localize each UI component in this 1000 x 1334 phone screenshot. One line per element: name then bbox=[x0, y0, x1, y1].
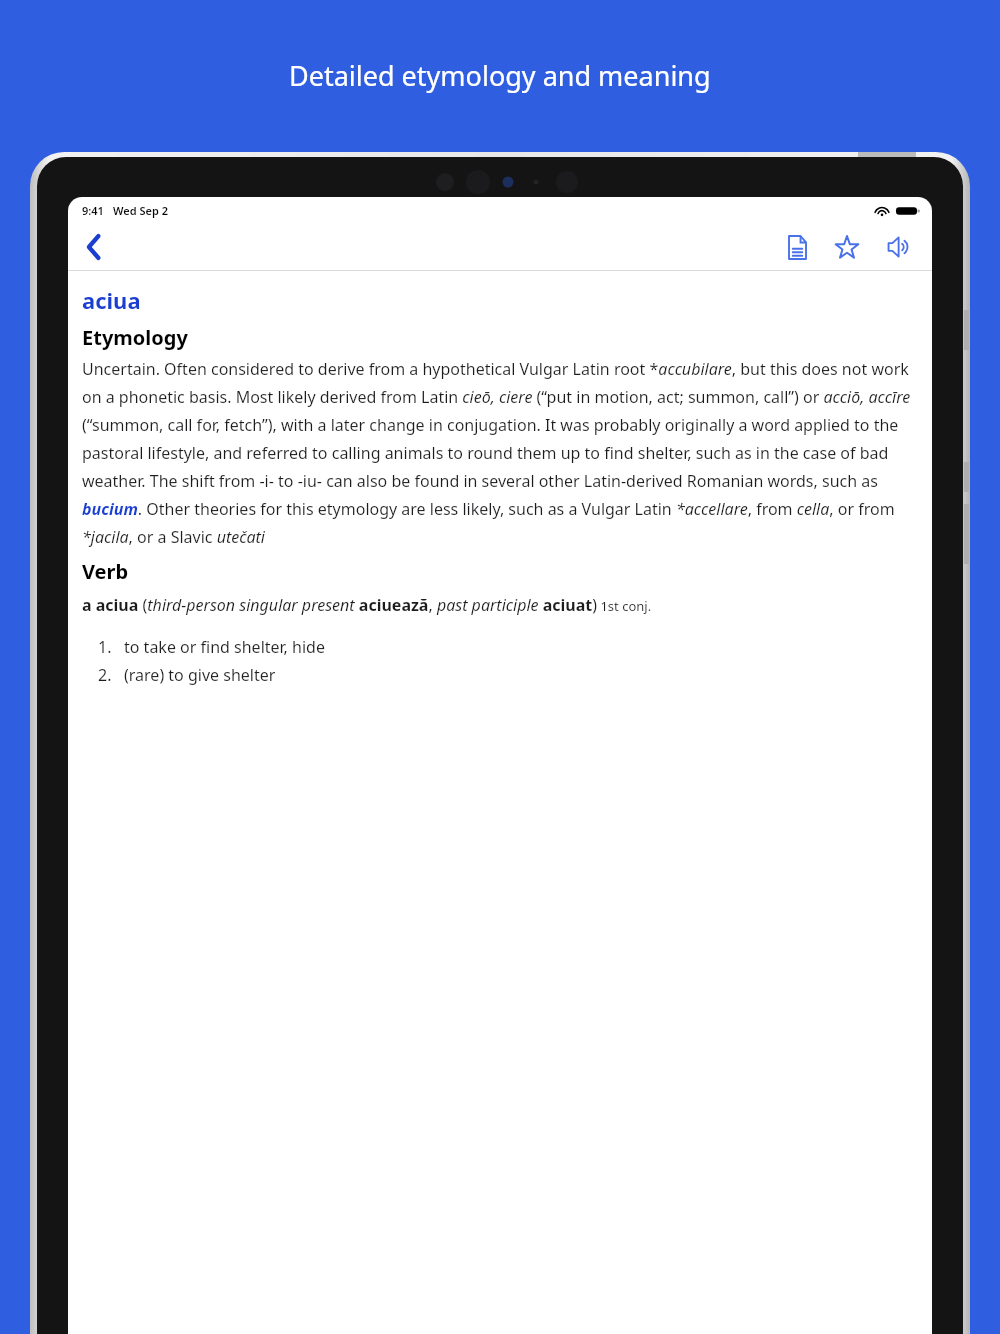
staticText: Detailed etymology and meaning bbox=[289, 57, 711, 94]
staticText: Verb bbox=[82, 558, 129, 585]
staticText: (rare) to give shelter bbox=[124, 664, 276, 686]
staticText: a aciua (third-person singular present a… bbox=[82, 594, 652, 616]
staticText: Uncertain. Often considered to derive fr… bbox=[82, 358, 918, 548]
staticText: to take or find shelter, hide bbox=[124, 636, 325, 658]
button[interactable]: Pronounce bbox=[872, 224, 928, 270]
staticText: 2. bbox=[98, 664, 112, 686]
staticText: 1. bbox=[98, 636, 112, 658]
button[interactable]: Favorite bbox=[822, 224, 872, 270]
button[interactable]: aciua bbox=[82, 285, 141, 315]
staticText: Wed Sep 2 bbox=[113, 203, 168, 218]
staticText: 9:41 bbox=[82, 203, 104, 218]
button[interactable]: Document bbox=[772, 224, 822, 270]
button[interactable]: Back bbox=[68, 224, 120, 270]
staticText: Etymology bbox=[82, 324, 188, 351]
